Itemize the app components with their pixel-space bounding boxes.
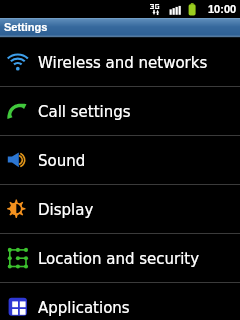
staticText: Location and security (38, 250, 200, 267)
staticText: Settings (4, 21, 48, 33)
button[interactable]: Applications (0, 283, 240, 320)
button[interactable]: Wireless and networks (0, 38, 240, 86)
staticText: Applications (38, 299, 130, 316)
staticText: Sound (38, 152, 86, 169)
button[interactable]: Display (0, 185, 240, 233)
staticText: Call settings (38, 103, 131, 120)
button[interactable]: Call settings (0, 87, 240, 135)
staticText: Wireless and networks (38, 54, 208, 71)
button[interactable]: Sound (0, 136, 240, 184)
staticText: 10:00 (208, 3, 237, 15)
button[interactable]: Location and security (0, 234, 240, 282)
staticText: Display (38, 201, 94, 218)
